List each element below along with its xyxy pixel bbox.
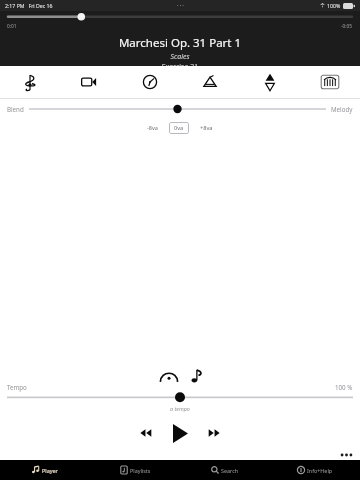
button[interactable]: Player [0, 460, 90, 480]
button[interactable]: More options [338, 450, 354, 460]
staticText: -0:05 [341, 23, 353, 30]
button[interactable]: +8va [195, 122, 218, 134]
staticText: Search [221, 467, 239, 474]
button[interactable]: Keyboard [300, 66, 360, 98]
staticText: Melody [331, 105, 353, 113]
staticText: -8va [147, 124, 158, 132]
button[interactable]: Rewind [137, 424, 155, 442]
staticText: Playlists [130, 467, 151, 474]
staticText: 0:01 [7, 23, 17, 30]
button[interactable] [0, 11, 360, 23]
button[interactable]: Search [180, 460, 270, 480]
button[interactable]: Note value [191, 369, 203, 383]
button[interactable]: 0va [169, 122, 189, 134]
button[interactable]: Transpose [240, 66, 300, 98]
button[interactable]: -8va [142, 122, 163, 134]
button[interactable]: Dynamics [180, 66, 240, 98]
staticText: Tempo [7, 383, 27, 391]
staticText: Exercise 31 [0, 62, 360, 66]
button[interactable] [7, 391, 353, 405]
staticText: Player [42, 467, 58, 474]
button[interactable]: Metronome [120, 66, 180, 98]
staticText: 2:17 PM Fri Dec 16 [5, 2, 53, 9]
staticText: Scales [0, 52, 360, 62]
staticText: Blend [7, 105, 24, 113]
button[interactable]: Play [167, 422, 193, 444]
staticText: 100% [327, 2, 341, 9]
button[interactable]: Video [60, 66, 120, 98]
button[interactable]: Fermata [157, 369, 181, 383]
staticText: • • • [177, 3, 184, 9]
button[interactable] [29, 99, 326, 119]
button[interactable]: Playlists [90, 460, 180, 480]
staticText: Info+Help [307, 467, 333, 474]
staticText: Marchesi Op. 31 Part 1 [0, 35, 360, 51]
button[interactable]: Clef [0, 66, 60, 98]
button[interactable]: Info+Help [270, 460, 360, 480]
staticText: 0va [174, 124, 184, 132]
button[interactable]: Fast forward [205, 424, 223, 442]
staticText: 100 % [335, 383, 353, 391]
staticText: +8va [200, 124, 213, 132]
staticText: a tempo [0, 405, 360, 412]
